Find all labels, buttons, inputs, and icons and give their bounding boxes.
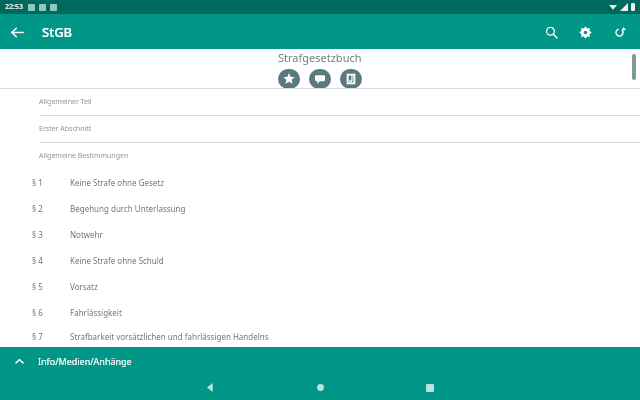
button[interactable]: Back [155,375,265,400]
staticText: § 7 [32,331,43,342]
staticText: Fahrlässigkeit [70,307,122,318]
button[interactable]: Document [340,69,362,89]
staticText: Info/Medien/Anhänge [38,355,132,367]
staticText: Strafbarkeit vorsätzlichen und fahrlässi… [70,331,269,342]
staticText: § 2 [32,203,43,214]
button[interactable]: Notes [309,69,331,89]
button[interactable]: § 3 [0,221,640,247]
button[interactable]: § 4 [0,247,640,273]
button[interactable]: § 5 [0,273,640,299]
staticText: Vorsatz [70,281,98,292]
button[interactable]: Allgemeiner Teil [0,89,640,115]
button[interactable]: Favorite [278,69,300,89]
staticText: § 3 [32,229,43,240]
staticText: § 6 [32,307,43,318]
staticText: StGB [42,23,73,41]
staticText: Strafgesetzbuch [278,50,362,65]
staticText: § 5 [32,281,43,292]
staticText: Allgemeiner Teil [39,97,92,107]
button[interactable]: Allgemeine Bestimmungen [0,143,640,169]
staticText: Notwehr [70,229,103,240]
button[interactable]: Refresh [602,15,636,49]
staticText: Erster Abschnitt [39,124,92,134]
button[interactable]: Search [534,15,568,49]
button[interactable]: § 1 [0,169,640,195]
staticText: Begehung durch Unterlassung [70,203,186,214]
staticText: 22:53 [5,2,23,12]
staticText: Allgemeine Bestimmungen [39,151,129,161]
button[interactable]: Recent apps [375,375,485,400]
button[interactable]: Settings [568,15,602,49]
button[interactable]: § 7 [0,325,640,347]
button[interactable]: § 2 [0,195,640,221]
button[interactable]: § 6 [0,299,640,325]
button[interactable]: Info/Medien/Anhänge [0,347,640,375]
button[interactable]: Back [0,15,34,49]
staticText: § 4 [32,255,43,266]
button[interactable]: Erster Abschnitt [0,116,640,142]
staticText: § 1 [32,177,43,188]
staticText: Keine Strafe ohne Schuld [70,255,164,266]
button[interactable]: Home [265,375,375,400]
staticText: Keine Strafe ohne Gesetz [70,177,164,188]
